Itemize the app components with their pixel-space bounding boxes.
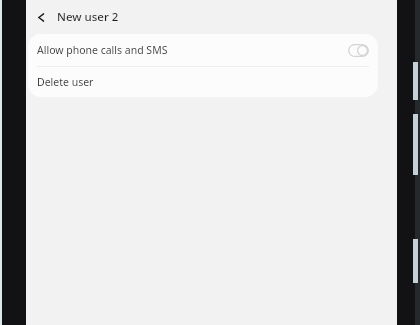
staticText: New user 2 [57, 9, 119, 25]
button[interactable]: Back [29, 4, 125, 30]
staticText: Allow phone calls and SMS [37, 43, 348, 57]
other: Allow phone calls and SMS switch, off [348, 44, 369, 57]
button[interactable]: Allow phone calls and SMS [28, 34, 378, 66]
button[interactable]: Delete user [28, 67, 378, 97]
staticText: Delete user [37, 75, 94, 89]
other: Back [35, 11, 48, 24]
